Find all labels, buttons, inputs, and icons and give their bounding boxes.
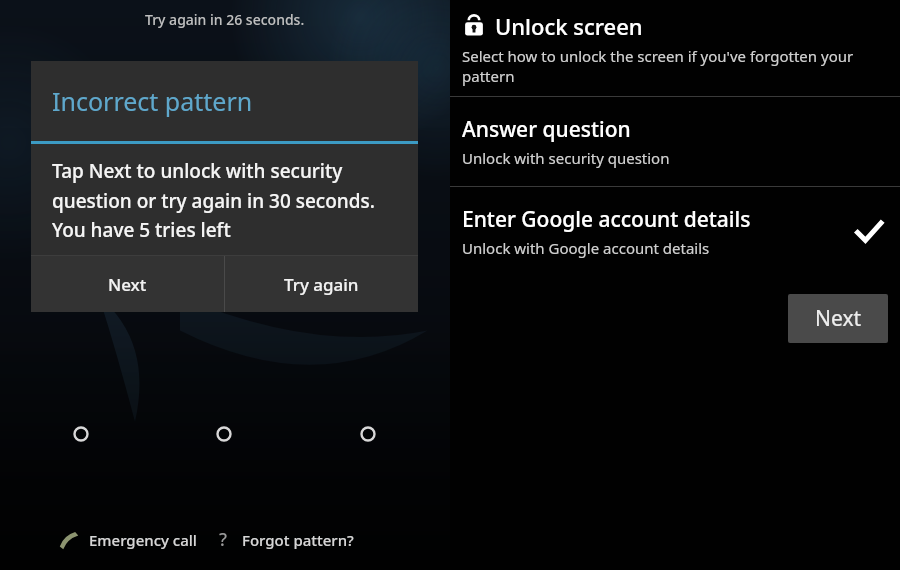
- staticText: Tap Next to unlock with security questio…: [52, 158, 404, 242]
- button[interactable]: ?: [219, 527, 354, 552]
- button[interactable]: Try again: [225, 256, 418, 312]
- button[interactable]: Next: [788, 294, 888, 343]
- staticText: ?: [219, 527, 228, 552]
- staticText: Forgot pattern?: [242, 530, 354, 550]
- staticText: Incorrect pattern: [52, 84, 253, 118]
- staticText: Try again in 26 seconds.: [145, 10, 305, 29]
- staticText: Try again: [284, 273, 359, 296]
- button[interactable]: Emergency call: [58, 529, 203, 551]
- staticText: Unlock with Google account details: [462, 238, 710, 258]
- staticText: Next: [815, 304, 862, 333]
- staticText: Select how to unlock the screen if you'v…: [462, 46, 890, 86]
- staticText: Emergency call: [89, 530, 197, 550]
- staticText: Answer question: [462, 115, 631, 144]
- button[interactable]: Next: [31, 256, 224, 312]
- button[interactable]: Enter Google account details: [450, 187, 900, 276]
- staticText: Next: [108, 273, 147, 296]
- other: Lock: [462, 14, 486, 38]
- staticText: Enter Google account details: [462, 205, 751, 234]
- staticText: Unlock screen: [495, 11, 643, 41]
- staticText: Unlock with security question: [462, 148, 670, 168]
- button[interactable]: Answer question: [450, 97, 900, 186]
